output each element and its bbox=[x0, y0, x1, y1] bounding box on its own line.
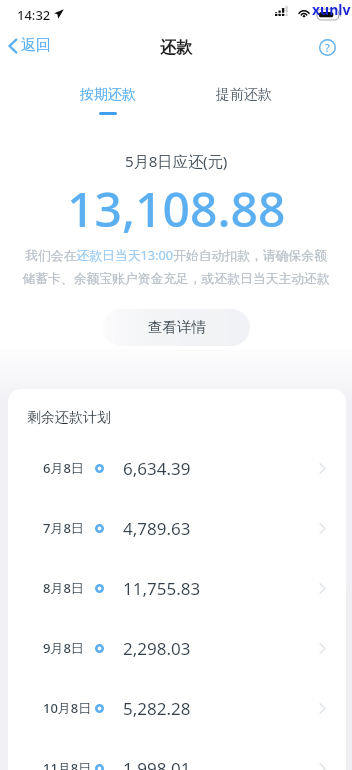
staticText: 6月8日 bbox=[43, 459, 84, 477]
button[interactable]: Help bbox=[313, 33, 341, 61]
staticText: 13,108.88 bbox=[67, 176, 286, 241]
button[interactable]: 6月8日 bbox=[8, 438, 346, 498]
button[interactable]: 返回 bbox=[0, 32, 61, 59]
staticText: 9月8日 bbox=[43, 639, 84, 657]
staticText: 我们会在还款日当天13:00开始自动扣款，请确保余额 储蓄卡、余额宝账户资金充足… bbox=[0, 246, 352, 287]
staticText: 2,298.03 bbox=[123, 637, 191, 660]
staticText: 提前还款 bbox=[216, 86, 272, 104]
staticText: 1,998.01 bbox=[123, 757, 191, 770]
staticText: 11,755.83 bbox=[123, 577, 201, 600]
staticText: 6,634.39 bbox=[123, 457, 191, 480]
button[interactable]: 7月8日 bbox=[8, 498, 346, 558]
button[interactable]: 10月8日 bbox=[8, 678, 346, 738]
staticText: 8月8日 bbox=[43, 579, 84, 597]
staticText: 查看详情 bbox=[148, 318, 206, 336]
staticText: 11月8日 bbox=[43, 759, 92, 770]
button[interactable]: 查看详情 bbox=[103, 309, 250, 346]
staticText: 14:32 bbox=[17, 6, 51, 24]
staticText: 10月8日 bbox=[43, 699, 92, 717]
staticText: 剩余还款计划 bbox=[27, 409, 111, 427]
staticText: 5,282.28 bbox=[123, 697, 191, 720]
button[interactable]: 11月8日 bbox=[8, 738, 346, 770]
button[interactable]: 9月8日 bbox=[8, 618, 346, 678]
staticText: 5月8日应还(元) bbox=[125, 151, 228, 172]
button[interactable]: 提前还款 bbox=[190, 82, 298, 119]
staticText: 7月8日 bbox=[43, 519, 84, 537]
staticText: 按期还款 bbox=[80, 86, 136, 104]
button[interactable]: 8月8日 bbox=[8, 558, 346, 618]
staticText: 返回 bbox=[21, 36, 51, 55]
staticText: ? bbox=[325, 40, 330, 55]
staticText: 还款 bbox=[160, 38, 192, 58]
staticText: xunlv bbox=[312, 0, 351, 19]
staticText: 4,789.63 bbox=[123, 517, 191, 540]
button[interactable]: 按期还款 bbox=[54, 82, 162, 119]
